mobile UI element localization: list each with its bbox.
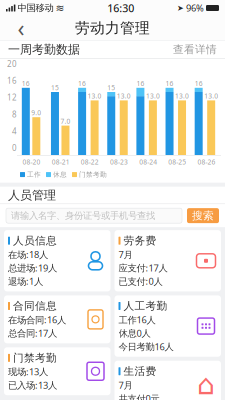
staticText: 08-26 xyxy=(197,158,215,166)
staticText: 中国移动 xyxy=(17,2,53,14)
staticText: 16 xyxy=(22,79,30,88)
staticText: 12 xyxy=(7,92,17,103)
button[interactable]: 返回 xyxy=(8,15,34,41)
staticText: 已支付:0人 xyxy=(118,275,162,287)
button[interactable]: 生活费 xyxy=(114,361,221,400)
staticText: 08-23 xyxy=(110,158,128,166)
staticText: 共支付0元 xyxy=(118,392,159,400)
staticText: 人员管理 xyxy=(8,188,56,202)
staticText: 13.0 xyxy=(204,91,218,100)
staticText: 工作 xyxy=(27,170,41,179)
staticText: 已入场:13人 xyxy=(8,379,57,391)
staticText: 16:30 xyxy=(107,1,134,15)
button[interactable]: 合同信息 xyxy=(4,295,110,343)
staticText: 在场合同:16人 xyxy=(8,313,66,326)
staticText: 应支付:17人 xyxy=(118,262,167,274)
button[interactable]: 人员信息 xyxy=(4,230,110,291)
staticText: 总合同:17人 xyxy=(8,327,57,339)
staticText: 人工考勤 xyxy=(123,299,167,312)
staticText: 工作16人 xyxy=(118,313,155,326)
staticText: 总进场:19人 xyxy=(8,262,57,274)
staticText: 13.0 xyxy=(88,91,102,100)
staticText: 休息0人 xyxy=(118,327,150,339)
staticText: 20 xyxy=(7,59,17,69)
staticText: 生活费 xyxy=(123,365,156,378)
staticText: 08-24 xyxy=(139,158,157,166)
staticText: 9.0 xyxy=(31,108,41,117)
staticText: 15 xyxy=(51,83,59,92)
staticText: 16 xyxy=(195,79,203,88)
staticText: 16 xyxy=(136,79,144,88)
staticText: 7月 xyxy=(118,248,132,261)
staticText: 一周考勤数据 xyxy=(8,42,80,57)
staticText: ➤ xyxy=(177,3,184,13)
staticText: 劳务费 xyxy=(123,234,156,247)
button[interactable]: 人工考勤 xyxy=(114,295,221,357)
staticText: 08-22 xyxy=(81,158,99,166)
staticText: 13.0 xyxy=(175,91,189,100)
staticText: 退场:1人 xyxy=(8,275,43,287)
staticText: 7.0 xyxy=(60,117,70,126)
staticText: 查看详情 xyxy=(173,43,217,56)
staticText: 16 xyxy=(78,79,86,88)
staticText: 4 xyxy=(12,126,17,136)
button[interactable]: 劳务费 xyxy=(114,230,221,291)
staticText: 搜索 xyxy=(192,209,214,222)
staticText: 门禁考勤 xyxy=(13,351,57,364)
staticText: 7月 xyxy=(118,379,132,391)
staticText: ⌂ xyxy=(197,369,215,400)
staticText: 08-25 xyxy=(168,158,186,166)
staticText: 现场:13人 xyxy=(8,365,48,378)
staticText: 劳动力管理 xyxy=(75,19,150,37)
staticText: 13.0 xyxy=(146,91,160,100)
staticText: 休息 xyxy=(53,170,67,179)
staticText: 人员信息 xyxy=(13,234,57,247)
staticText: 门禁考勤 xyxy=(79,170,107,179)
button[interactable]: 查看详情 xyxy=(173,43,217,56)
staticText: ‹ xyxy=(17,13,24,43)
button[interactable]: 门禁考勤 xyxy=(4,347,110,395)
staticText: 08-21 xyxy=(52,158,70,166)
staticText: 请输入名字、身份证号或手机号查找 xyxy=(11,210,155,221)
staticText: 16 xyxy=(165,79,173,88)
staticText: 96% xyxy=(186,2,204,14)
staticText: 8 xyxy=(12,109,17,120)
staticText: 0 xyxy=(12,143,17,153)
staticText: ≋ xyxy=(55,2,64,14)
staticText: 08-20 xyxy=(23,158,41,166)
staticText: 15 xyxy=(107,83,115,92)
staticText: 16 xyxy=(7,75,17,86)
staticText: 13.0 xyxy=(117,91,131,100)
staticText: 今日考勤16人 xyxy=(118,340,173,353)
staticText: 在场:18人 xyxy=(8,248,48,261)
staticText: 合同信息 xyxy=(13,299,57,312)
button[interactable]: 搜索 xyxy=(187,208,219,223)
